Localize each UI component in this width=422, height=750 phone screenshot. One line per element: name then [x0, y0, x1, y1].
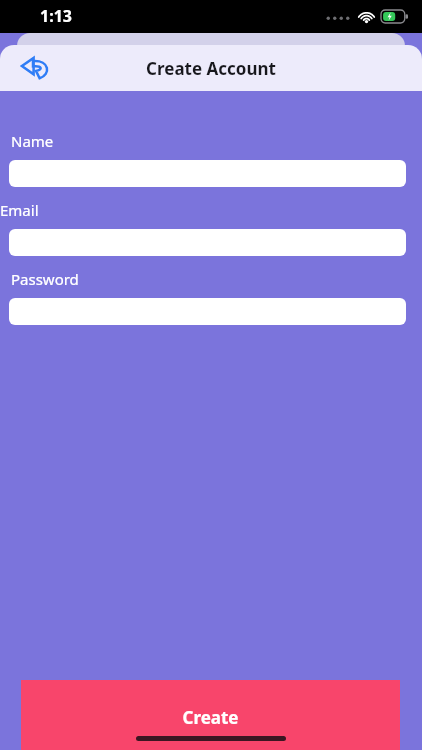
button[interactable] [9, 160, 406, 187]
button[interactable]: Back [14, 46, 58, 90]
staticText: Email [0, 200, 39, 220]
staticText: Create [21, 706, 400, 729]
staticText: Password [11, 269, 79, 289]
staticText: Create Account [0, 57, 422, 80]
button[interactable]: Create [21, 680, 400, 750]
button[interactable] [9, 229, 406, 256]
staticText: Name [11, 131, 54, 151]
button[interactable] [9, 298, 406, 325]
staticText: 1:13 [40, 5, 72, 27]
